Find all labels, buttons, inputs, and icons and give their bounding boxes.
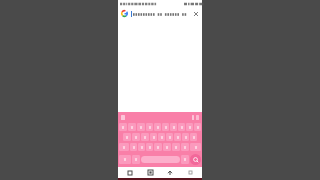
button[interactable] <box>150 133 157 141</box>
button[interactable] <box>163 143 171 151</box>
button[interactable] <box>174 133 181 141</box>
button[interactable]: Clear search <box>192 10 199 17</box>
button[interactable]: Keyboard options <box>121 115 125 120</box>
button[interactable]: Clear search <box>118 8 202 19</box>
button[interactable] <box>130 143 137 151</box>
button[interactable] <box>146 123 153 131</box>
button[interactable]: Search <box>190 154 201 165</box>
button[interactable]: Symbols <box>119 155 131 164</box>
button[interactable]: Shift <box>119 143 129 151</box>
button[interactable] <box>194 123 201 131</box>
button[interactable] <box>170 123 177 131</box>
button[interactable]: Period <box>181 155 189 164</box>
button[interactable]: Space <box>141 156 180 163</box>
button[interactable]: Recents <box>122 167 138 178</box>
button[interactable] <box>172 143 180 151</box>
button[interactable] <box>186 123 193 131</box>
button[interactable] <box>146 143 153 151</box>
button[interactable] <box>181 143 189 151</box>
button[interactable] <box>190 133 197 141</box>
button[interactable] <box>166 133 173 141</box>
button[interactable]: Backspace <box>190 143 201 151</box>
button[interactable] <box>182 133 189 141</box>
button[interactable] <box>128 123 136 131</box>
button[interactable] <box>138 143 145 151</box>
button[interactable] <box>132 133 140 141</box>
button[interactable]: Comma <box>132 155 140 164</box>
button[interactable]: Settings <box>192 115 194 120</box>
button[interactable] <box>154 123 161 131</box>
button[interactable] <box>119 123 127 131</box>
button[interactable] <box>178 123 185 131</box>
button[interactable] <box>137 123 145 131</box>
button[interactable] <box>141 133 149 141</box>
button[interactable] <box>123 133 131 141</box>
button[interactable] <box>162 123 169 131</box>
button[interactable]: Back <box>162 167 178 178</box>
button[interactable] <box>154 143 162 151</box>
button[interactable]: Home <box>142 167 158 178</box>
button[interactable] <box>158 133 165 141</box>
button[interactable]: Keyboard <box>182 167 198 178</box>
